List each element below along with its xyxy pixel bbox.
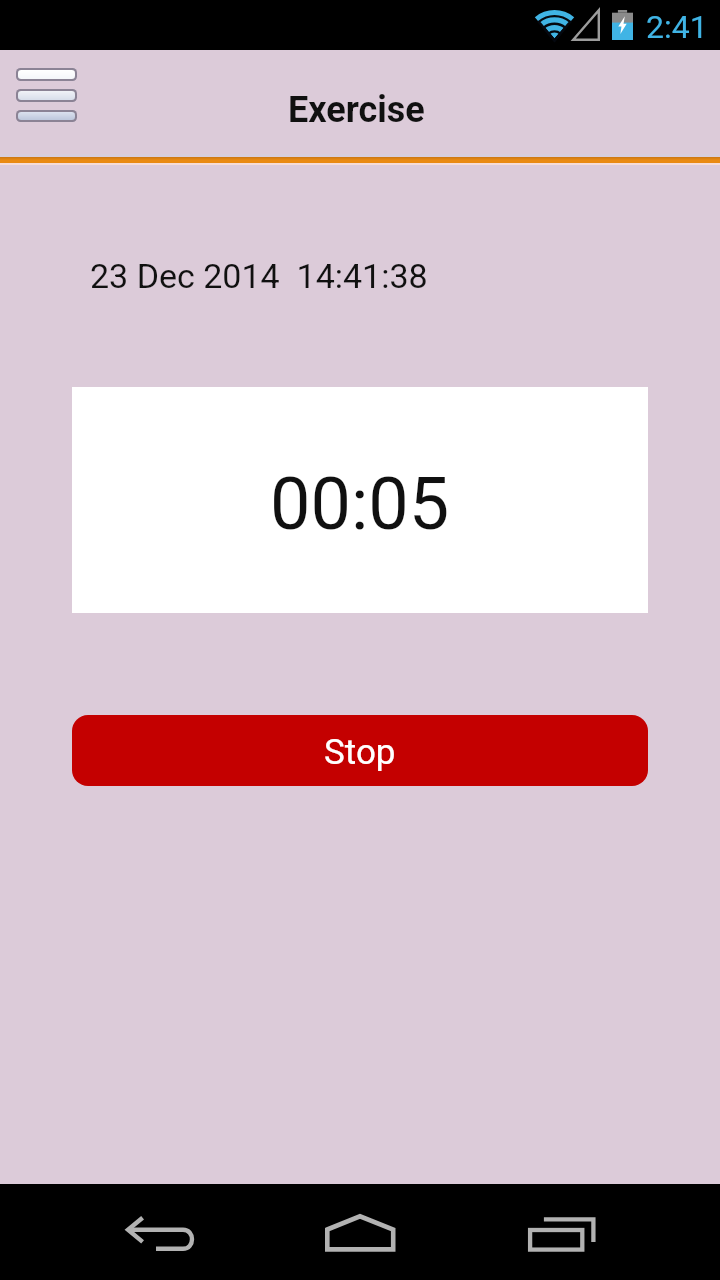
staticText: Exercise	[288, 89, 425, 131]
button[interactable]: Back	[112, 1184, 208, 1280]
button[interactable]: Stop	[72, 715, 648, 786]
staticText: Stop	[324, 732, 396, 773]
staticText: 23 Dec 2014 14:41:38	[90, 256, 428, 296]
button[interactable]: Recent apps	[514, 1184, 610, 1280]
staticText: 2:41	[646, 8, 708, 46]
button[interactable]: Open navigation menu	[16, 68, 77, 122]
button[interactable]: Home	[312, 1184, 408, 1280]
staticText: 00:05	[270, 462, 450, 546]
